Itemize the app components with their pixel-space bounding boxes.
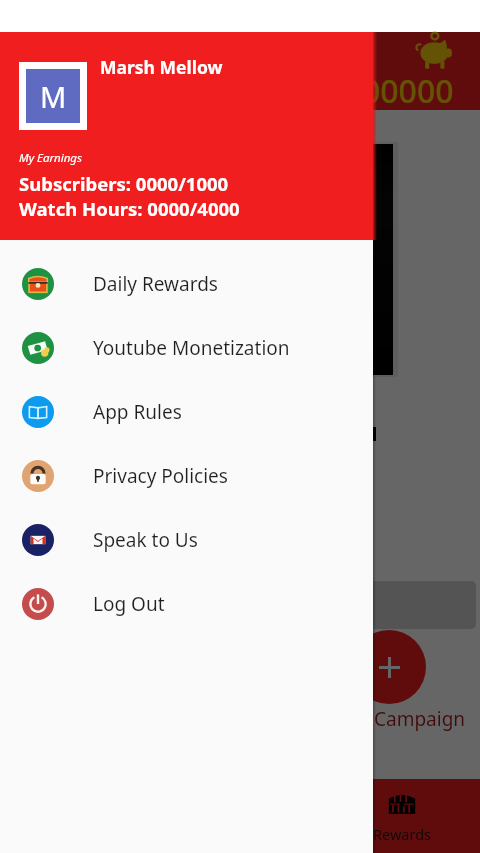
staticText: 00000	[362, 69, 454, 107]
staticText: App Rules	[93, 399, 182, 425]
staticText: Privacy Policies	[93, 463, 228, 489]
staticText: Youtube Monetization	[93, 335, 290, 361]
staticText: Marsh Mellow	[100, 55, 223, 79]
button[interactable]: App Rules	[0, 380, 373, 444]
staticText: Watch Hours: 0000/4000	[19, 196, 240, 221]
button[interactable]: Add campaign	[352, 630, 426, 704]
staticText: Daily Rewards	[93, 271, 218, 297]
staticText: Speak to Us	[93, 527, 198, 553]
button[interactable]: Speak to Us	[0, 508, 373, 572]
staticText: Log Out	[93, 591, 165, 617]
button[interactable]: Daily Rewards	[0, 252, 373, 316]
staticText: M	[40, 77, 67, 116]
staticText: Campaign	[374, 706, 466, 732]
staticText: Rewards	[373, 824, 431, 844]
button[interactable]: Privacy Policies	[0, 444, 373, 508]
staticText: My Earnings	[19, 150, 82, 166]
button[interactable]: Rewards	[348, 779, 456, 853]
button[interactable]: Open navigation drawer	[12, 51, 52, 91]
staticText: Subscribers: 0000/1000	[19, 171, 229, 196]
button[interactable]: Youtube Monetization	[0, 316, 373, 380]
button[interactable]: Log Out	[0, 572, 373, 636]
